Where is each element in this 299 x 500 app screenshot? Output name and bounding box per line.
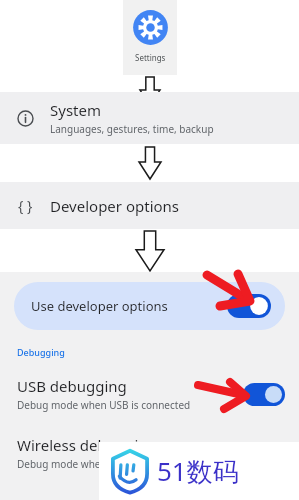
button[interactable]: Settings (123, 0, 177, 75)
staticText: Debugging (17, 346, 65, 358)
staticText: Use developer options (31, 297, 168, 315)
staticText: { } (18, 196, 33, 215)
button[interactable]: Use developer options (14, 282, 285, 330)
staticText: Settings (135, 52, 166, 63)
staticText: 51数码 (157, 453, 239, 489)
staticText: System (50, 100, 101, 120)
button[interactable]: USB debugging (0, 371, 299, 417)
button[interactable]: { } (0, 182, 299, 229)
staticText: Developer options (50, 196, 180, 216)
staticText: Languages, gestures, time, backup (50, 122, 214, 136)
staticText: Debug mode when Wi-Fi is connected (17, 457, 194, 471)
button[interactable]: Wireless debugging (0, 435, 299, 479)
other: Settings (132, 9, 169, 46)
staticText: USB debugging (17, 376, 127, 396)
staticText: Wireless debugging (17, 435, 157, 455)
staticText: Debug mode when USB is connected (17, 398, 191, 412)
button[interactable]: System (0, 92, 299, 144)
